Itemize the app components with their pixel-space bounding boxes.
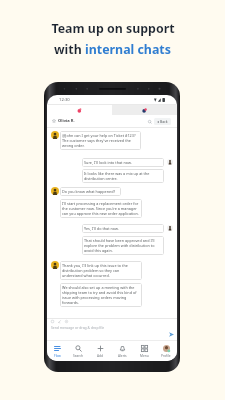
staticText: That should have been approved and I'll …	[84, 238, 162, 253]
staticText: Olivia R.	[58, 118, 75, 124]
button[interactable]: Do you know what happened?	[60, 187, 121, 196]
button[interactable]: Flow	[47, 341, 68, 361]
staticText: Team up on support	[51, 20, 175, 37]
button[interactable]: That should have been approved and I'll …	[82, 236, 164, 255]
button[interactable]: Add	[89, 341, 111, 361]
staticText: Back	[160, 119, 168, 124]
button[interactable]: Sure, I'll look into that now.	[82, 158, 164, 167]
staticText: internal chats	[85, 41, 171, 58]
button[interactable]: Chats tab	[112, 105, 177, 115]
button[interactable]: Thank you, I'll link up this issue to th…	[60, 261, 142, 280]
button[interactable]: @John can I get your help on Ticket #123…	[60, 131, 141, 150]
staticText: Do you know what happened?	[62, 189, 116, 194]
staticText: Sure, I'll look into that now.	[84, 160, 132, 165]
button[interactable]: Workspace tab	[47, 105, 112, 115]
staticText: Flow	[54, 354, 61, 358]
button[interactable]: More options	[64, 319, 69, 324]
staticText: Search	[73, 354, 84, 358]
button[interactable]: We should also set up a meeting with the…	[60, 283, 142, 307]
button[interactable]: Send	[168, 331, 175, 338]
button[interactable]: Alerts	[111, 341, 133, 361]
button[interactable]: Search	[147, 119, 152, 124]
staticText: 12:30	[59, 97, 70, 103]
button[interactable]: Menu	[133, 341, 155, 361]
staticText: It looks like there was a mix up at the …	[84, 171, 162, 181]
button[interactable]: Emoji	[50, 319, 55, 324]
button[interactable]: It looks like there was a mix up at the …	[82, 169, 164, 183]
staticText: Profile	[161, 354, 171, 358]
staticText: I'll start processing a replacement orde…	[62, 201, 140, 216]
staticText: @John can I get your help on Ticket #123…	[62, 133, 139, 148]
staticText: We should also set up a meeting with the…	[62, 285, 140, 305]
staticText: with	[54, 41, 85, 58]
button[interactable]: Attach file	[57, 319, 62, 324]
staticText: Alerts	[118, 354, 127, 358]
staticText: Yes, I'll do that now.	[84, 226, 119, 231]
button[interactable]: I'll start processing a replacement orde…	[60, 199, 142, 218]
staticText: Add	[97, 354, 103, 358]
button[interactable]: Profile	[155, 341, 177, 361]
button[interactable]: Search	[68, 341, 89, 361]
staticText: Menu	[140, 354, 149, 358]
button[interactable]: Yes, I'll do that now.	[82, 224, 164, 233]
staticText: Send message or drag & drop file	[51, 325, 105, 330]
staticText: Thank you, I'll link up this issue to th…	[62, 263, 140, 278]
button[interactable]: Back	[154, 118, 171, 125]
